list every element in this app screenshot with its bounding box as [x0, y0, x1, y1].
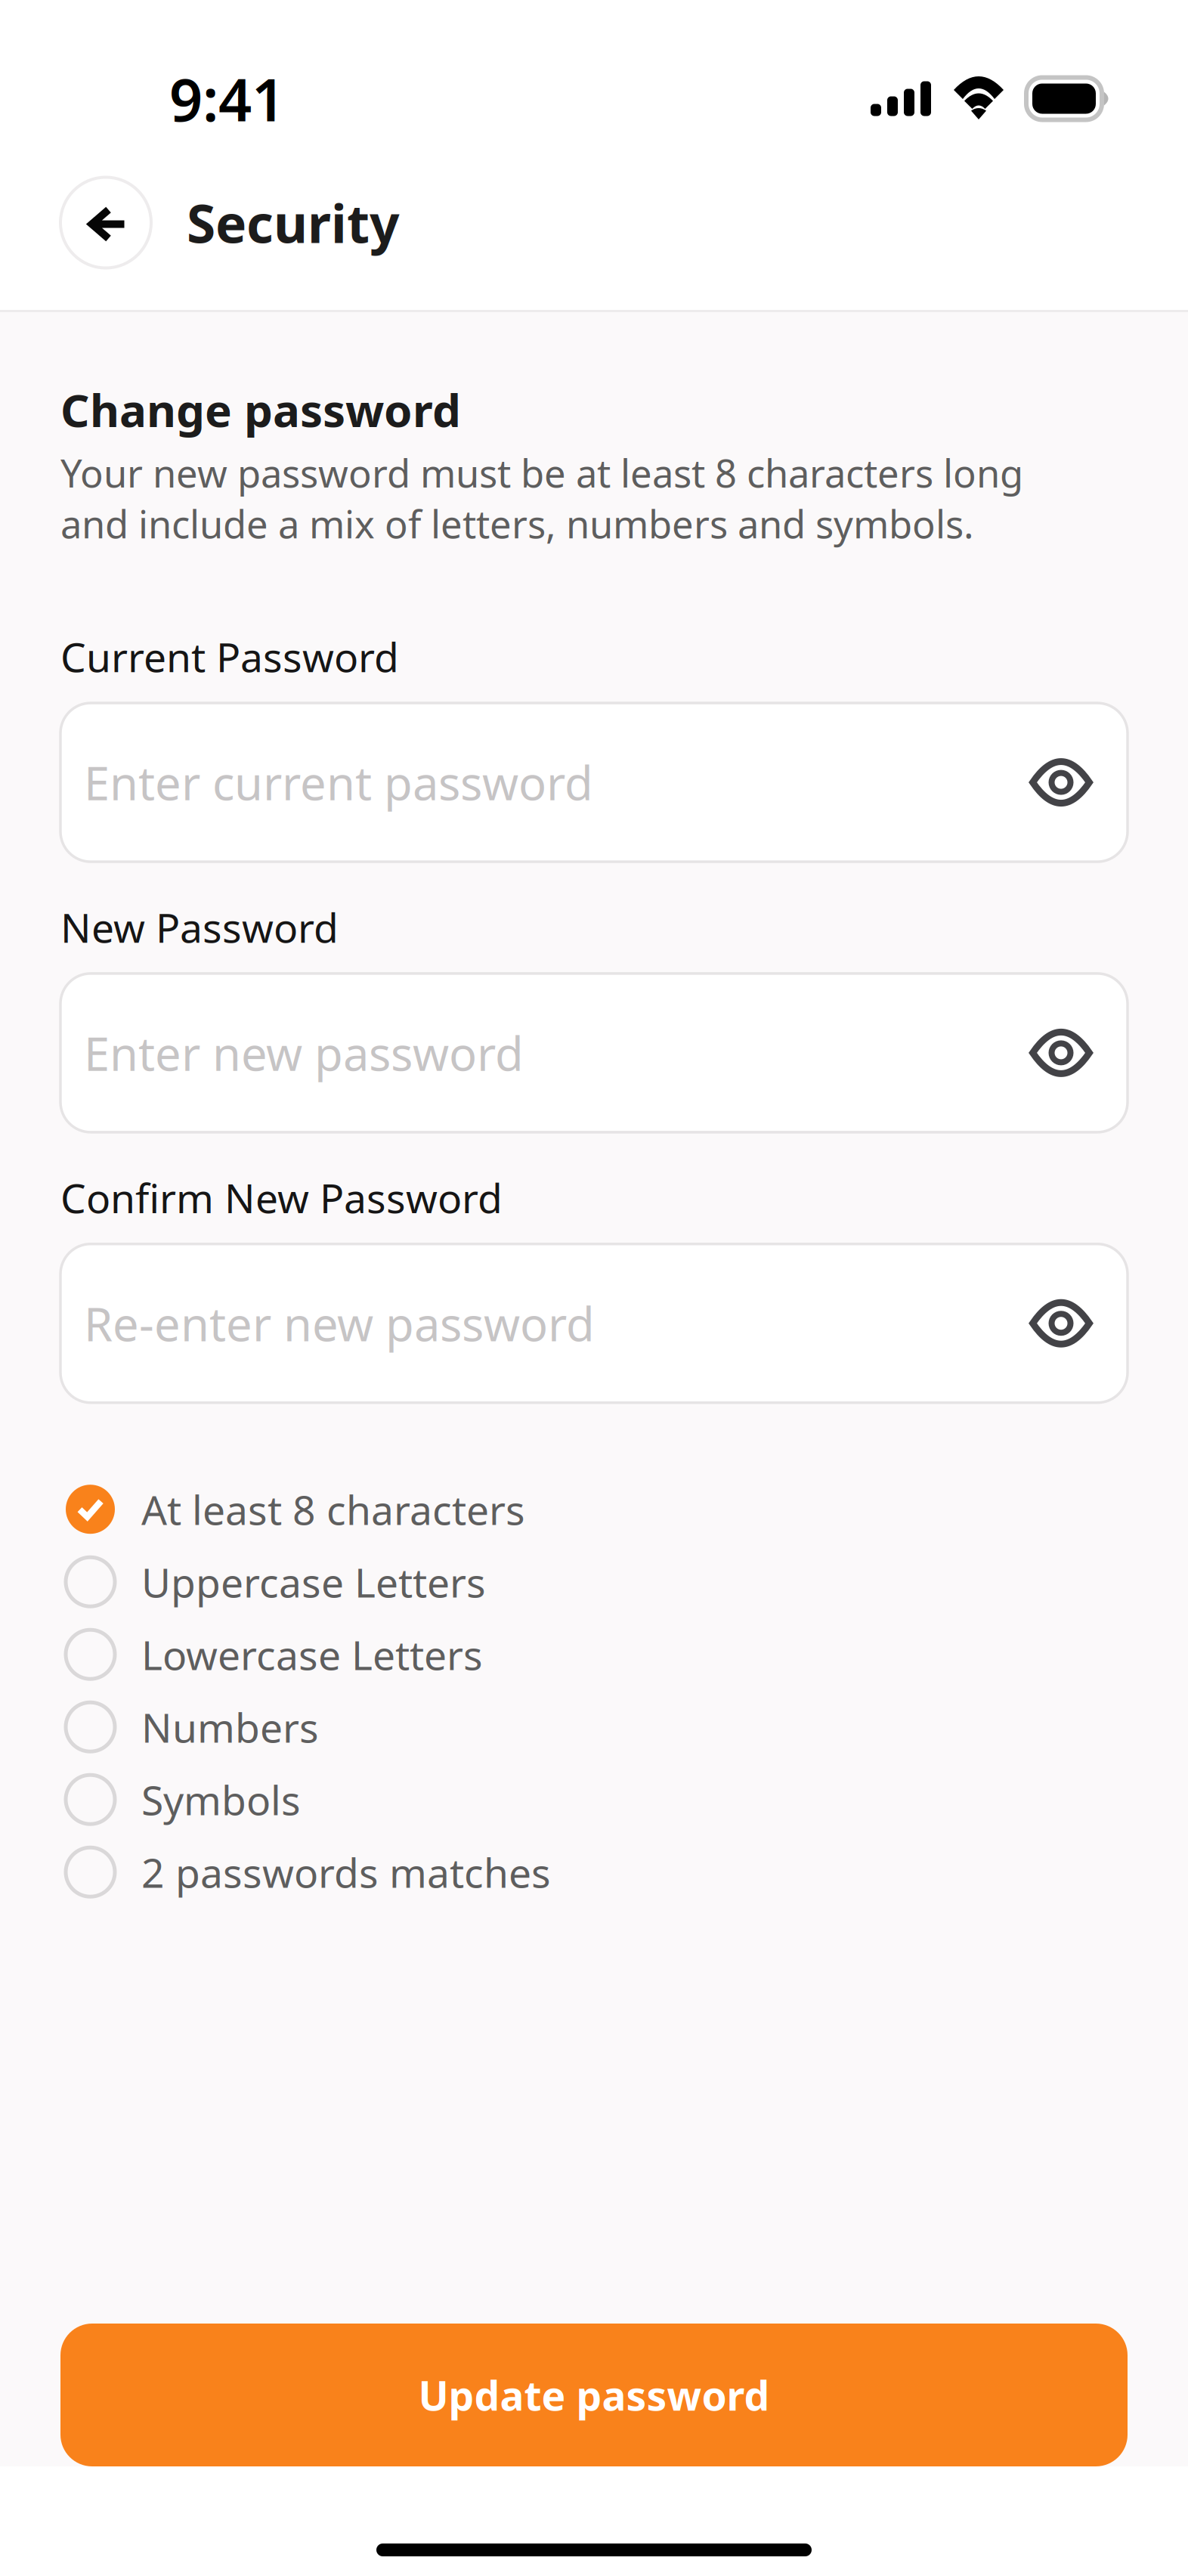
- staticText: Change password: [60, 379, 461, 440]
- staticText: Confirm New Password: [60, 1171, 503, 1224]
- staticText: Security: [187, 188, 400, 257]
- staticText: Update password: [418, 2368, 770, 2422]
- staticText: 9:41: [169, 60, 285, 137]
- staticText: Current Password: [60, 630, 399, 683]
- staticText: Enter current password: [84, 752, 593, 813]
- button[interactable]: Update password: [60, 2324, 1128, 2466]
- button[interactable]: Show Confirm New Password: [1029, 1299, 1093, 1347]
- staticText: Re-enter new password: [84, 1293, 595, 1354]
- staticText: 2 passwords matches: [141, 1845, 551, 1899]
- staticText: At least 8 characters: [141, 1482, 525, 1536]
- staticText: Lowercase Letters: [141, 1628, 483, 1681]
- staticText: Symbols: [141, 1773, 301, 1826]
- staticText: Numbers: [141, 1700, 319, 1754]
- button[interactable]: Back: [60, 177, 151, 268]
- staticText: New Password: [60, 900, 339, 954]
- button[interactable]: Show Current Password: [1029, 758, 1093, 807]
- staticText: Uppercase Letters: [141, 1555, 486, 1609]
- staticText: Enter new password: [84, 1022, 524, 1084]
- button[interactable]: Show New Password: [1029, 1029, 1093, 1077]
- staticText: Your new password must be at least 8 cha…: [60, 447, 1023, 549]
